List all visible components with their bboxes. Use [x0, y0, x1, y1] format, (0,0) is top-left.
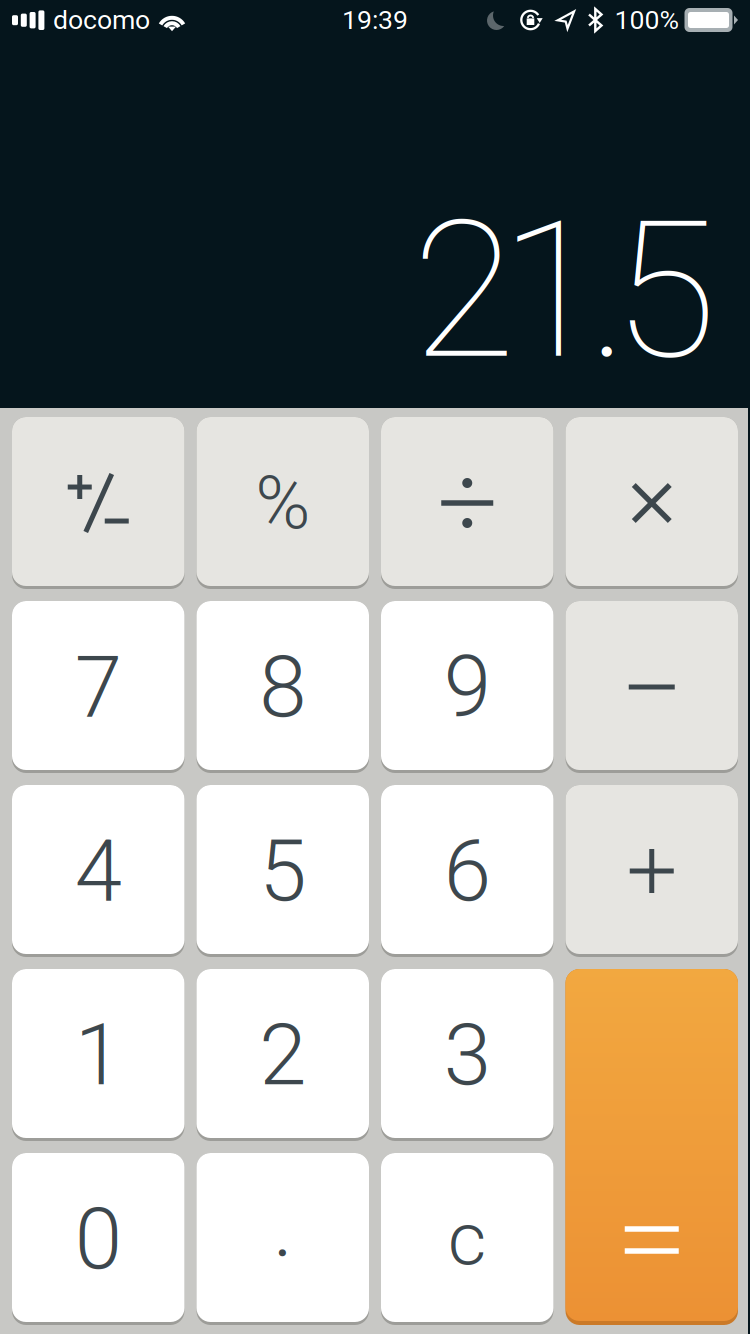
- staticText: 21.5: [412, 180, 717, 402]
- button[interactable]: Subtract: [565, 601, 738, 773]
- button[interactable]: Add: [565, 785, 738, 957]
- button[interactable]: 5: [196, 785, 369, 957]
- button[interactable]: .: [196, 1153, 369, 1325]
- staticText: 19:39: [342, 4, 408, 36]
- staticText: 9: [444, 637, 491, 737]
- button[interactable]: 9: [381, 601, 553, 773]
- staticText: %: [255, 459, 310, 547]
- staticText: 100%: [614, 4, 679, 36]
- staticText: .: [273, 1177, 293, 1277]
- staticText: 6: [444, 821, 491, 921]
- button[interactable]: 3: [381, 969, 553, 1141]
- button[interactable]: 6: [381, 785, 553, 957]
- staticText: docomo: [53, 4, 150, 36]
- button[interactable]: c: [381, 1153, 553, 1325]
- staticText: 5: [259, 821, 306, 921]
- button[interactable]: Equals: [565, 969, 738, 1325]
- staticText: c: [448, 1195, 487, 1283]
- staticText: 1: [75, 1005, 122, 1105]
- button[interactable]: Divide: [381, 417, 553, 589]
- button[interactable]: %: [196, 417, 369, 589]
- button[interactable]: Plus minus: [12, 417, 184, 589]
- button[interactable]: 1: [12, 969, 184, 1141]
- button[interactable]: 2: [196, 969, 369, 1141]
- staticText: 4: [75, 821, 122, 921]
- button[interactable]: Multiply: [565, 417, 738, 589]
- staticText: 8: [259, 637, 306, 737]
- staticText: 0: [75, 1189, 122, 1289]
- button[interactable]: 8: [196, 601, 369, 773]
- button[interactable]: 7: [12, 601, 184, 773]
- staticText: 7: [75, 637, 122, 737]
- staticText: 3: [444, 1005, 491, 1105]
- staticText: 2: [259, 1005, 306, 1105]
- button[interactable]: 4: [12, 785, 184, 957]
- button[interactable]: 0: [12, 1153, 184, 1325]
